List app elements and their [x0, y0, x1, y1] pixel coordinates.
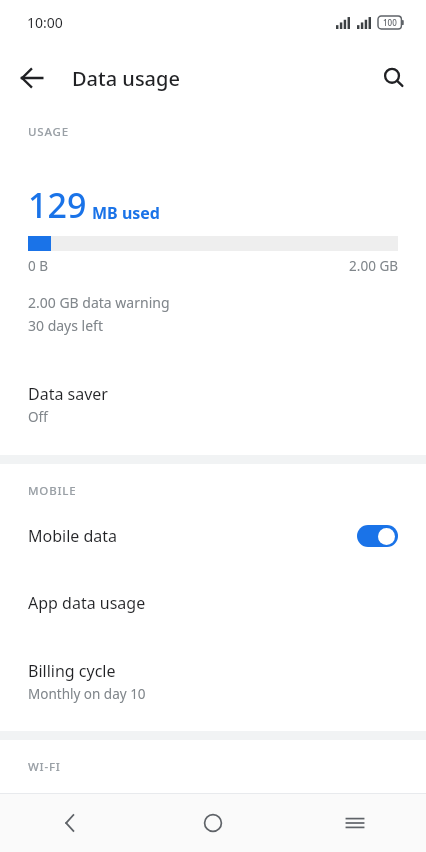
button[interactable]: Recent apps: [284, 793, 426, 852]
staticText: Data saver: [28, 383, 108, 405]
staticText: WI-FI: [28, 759, 61, 775]
staticText: Billing cycle: [28, 660, 116, 682]
staticText: App data usage: [28, 592, 146, 614]
staticText: 2.00 GB data warning: [28, 293, 170, 312]
button[interactable]: Back: [12, 58, 52, 98]
button[interactable]: Data saver: [0, 383, 426, 426]
button[interactable]: Back: [0, 793, 142, 852]
staticText: USAGE: [28, 124, 69, 140]
staticText: Monthly on day 10: [28, 685, 146, 703]
button[interactable]: App data usage: [0, 592, 426, 614]
button[interactable]: Mobile data toggle: [357, 525, 398, 547]
staticText: Off: [28, 408, 48, 426]
staticText: 10:00: [27, 13, 63, 32]
button[interactable]: Mobile data: [0, 525, 426, 547]
staticText: Mobile data: [28, 525, 118, 547]
staticText: 129: [28, 182, 87, 228]
staticText: 0 B: [28, 257, 49, 275]
button[interactable]: Search: [372, 56, 416, 100]
staticText: 100: [383, 17, 397, 28]
staticText: MOBILE: [28, 483, 77, 499]
staticText: 30 days left: [28, 316, 103, 335]
staticText: MB used: [92, 202, 160, 224]
staticText: Data usage: [72, 65, 180, 92]
button[interactable]: Billing cycle: [0, 660, 426, 703]
staticText: 2.00 GB: [349, 257, 398, 275]
button[interactable]: Home: [142, 793, 284, 852]
